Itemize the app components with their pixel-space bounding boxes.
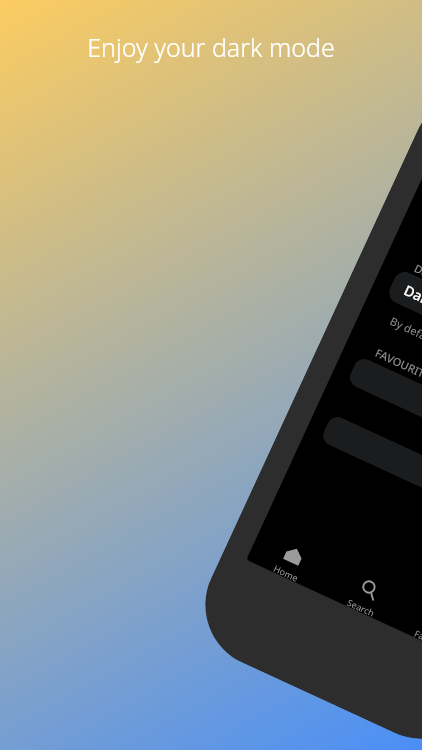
button[interactable]: [346, 355, 422, 472]
button[interactable]: Home: [246, 524, 338, 595]
staticText: Search: [346, 596, 377, 618]
staticText: Dark theme: [401, 280, 422, 331]
button[interactable]: Favourites: [396, 593, 422, 663]
staticText: Favourites: [413, 627, 422, 655]
staticText: Dark mode: [412, 260, 422, 299]
other: Search: [357, 577, 382, 602]
other: Home: [281, 542, 307, 568]
button[interactable]: [320, 413, 422, 530]
staticText: Enjoy your dark mode: [0, 30, 422, 64]
button[interactable]: Search: [321, 559, 412, 629]
button[interactable]: Dark theme: [385, 268, 422, 387]
staticText: By default on this device: [388, 313, 422, 379]
staticText: FAVOURITES: [373, 345, 422, 386]
staticText: Home: [272, 562, 301, 583]
